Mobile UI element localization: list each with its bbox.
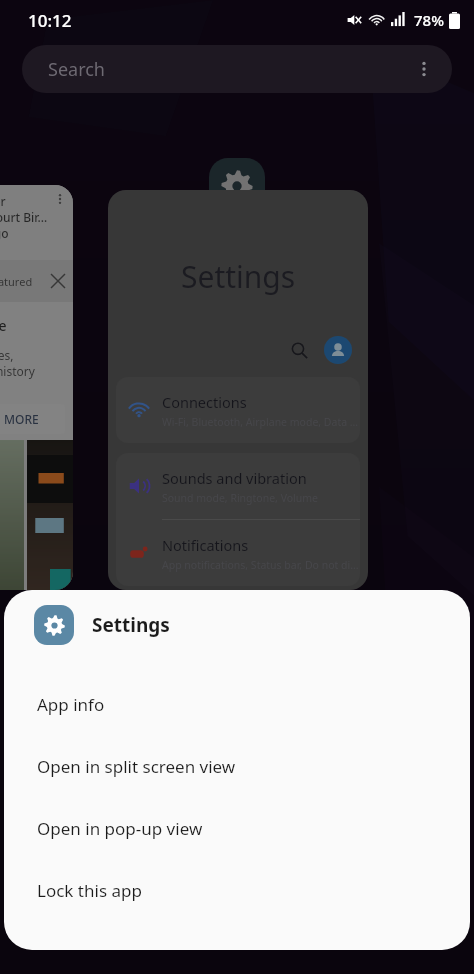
button[interactable]: Over e Court Bir… s ago bbox=[0, 185, 73, 590]
staticText: race bbox=[0, 316, 7, 335]
staticText: App notifications, Status bar, Do not di… bbox=[162, 558, 360, 572]
staticText: Over e Court Bir… s ago bbox=[0, 193, 48, 241]
button[interactable]: Search settings bbox=[284, 335, 314, 365]
staticText: App info bbox=[37, 693, 105, 716]
staticText: Featured bbox=[0, 274, 33, 289]
staticText: Open in pop-up view bbox=[37, 817, 203, 840]
staticText: Open in split screen view bbox=[37, 755, 236, 778]
button[interactable]: Settings app icon bbox=[209, 158, 265, 214]
staticText: Search bbox=[48, 57, 105, 82]
staticText: tories, nd history bbox=[0, 347, 35, 380]
button[interactable]: MORE bbox=[0, 404, 65, 434]
button[interactable]: App info bbox=[4, 673, 470, 735]
staticText: Settings bbox=[92, 612, 170, 638]
staticText: MORE bbox=[4, 411, 39, 427]
staticText: Settings bbox=[181, 256, 296, 297]
staticText: Notifications bbox=[162, 535, 249, 555]
staticText: 78% bbox=[414, 10, 444, 30]
button[interactable]: Lock this app bbox=[4, 859, 470, 921]
staticText: Sounds and vibration bbox=[162, 468, 307, 488]
button[interactable]: Sounds and vibration bbox=[116, 453, 360, 519]
button[interactable]: Connections bbox=[116, 377, 360, 443]
button[interactable]: Open in pop-up view bbox=[4, 797, 470, 859]
button[interactable]: Open in split screen view bbox=[4, 735, 470, 797]
button[interactable]: More options bbox=[410, 55, 438, 83]
staticText: 10:12 bbox=[28, 9, 72, 32]
staticText: Sound mode, Ringtone, Volume bbox=[162, 491, 319, 505]
staticText: Connections bbox=[162, 392, 247, 412]
button[interactable]: Account bbox=[324, 336, 352, 364]
staticText: Lock this app bbox=[37, 879, 142, 902]
staticText: Wi-Fi, Bluetooth, Airplane mode, Data us… bbox=[162, 415, 360, 429]
button[interactable]: Settings bbox=[108, 190, 368, 590]
button[interactable]: Search bbox=[22, 45, 452, 93]
button[interactable]: Notifications bbox=[116, 520, 360, 586]
